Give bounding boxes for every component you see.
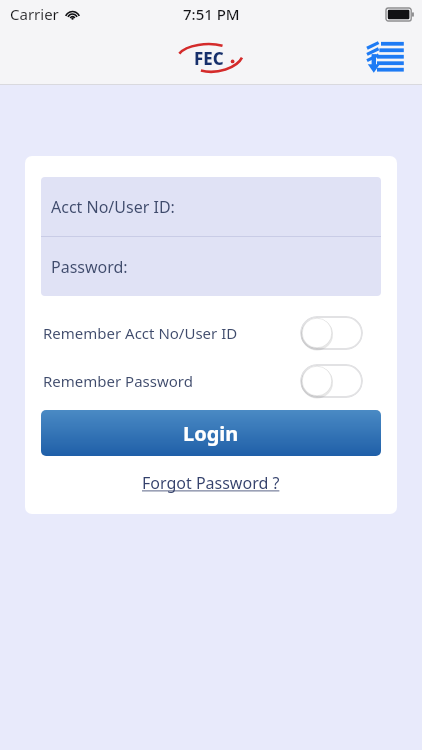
staticText: Forgot Password ?	[142, 472, 280, 494]
button[interactable]: Forgot Password ?	[136, 470, 286, 496]
staticText: Remember Acct No/User ID	[43, 323, 238, 343]
button[interactable]: Remember Password	[41, 364, 381, 398]
staticText: FEC	[194, 47, 224, 70]
staticText: Login	[183, 420, 239, 447]
button[interactable]: Menu	[362, 34, 408, 80]
button[interactable]: Password:	[41, 237, 381, 296]
staticText: Carrier	[10, 4, 59, 24]
button[interactable]: Login	[41, 410, 381, 456]
staticText: 7:51 PM	[183, 4, 240, 24]
staticText: Acct No/User ID:	[51, 196, 175, 218]
staticText: Password:	[51, 256, 128, 278]
staticText: Remember Password	[43, 371, 193, 391]
button[interactable]: Remember Acct No/User ID	[41, 316, 381, 350]
button[interactable]: Acct No/User ID:	[41, 177, 381, 236]
